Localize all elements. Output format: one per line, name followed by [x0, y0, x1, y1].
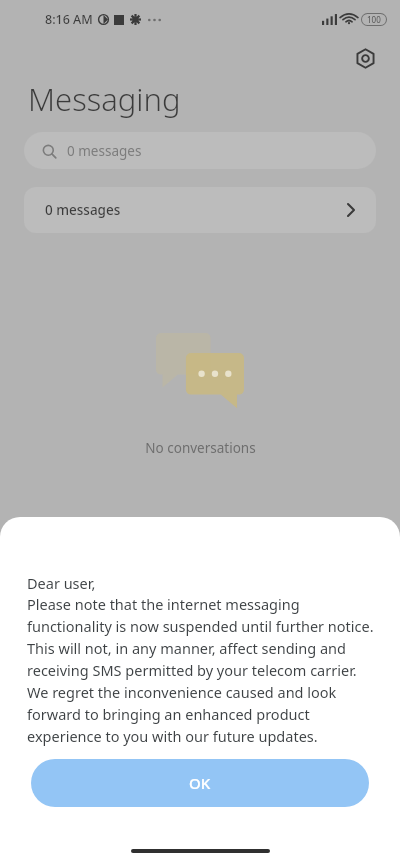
staticText: Dear user, Please note that the internet…	[27, 573, 378, 746]
button[interactable]: OK	[31, 759, 369, 807]
staticText: No conversations	[145, 439, 256, 457]
staticText: 0 messages	[45, 201, 121, 219]
staticText: OK	[189, 773, 211, 793]
staticText: 100	[367, 14, 381, 25]
button[interactable]: 0 messages	[24, 187, 376, 233]
staticText: 0 messages	[67, 142, 142, 160]
button[interactable]: 0 messages	[24, 132, 376, 169]
button[interactable]: Settings	[348, 41, 382, 75]
staticText: 8:16 AM	[45, 11, 93, 28]
staticText: Messaging	[28, 78, 181, 120]
